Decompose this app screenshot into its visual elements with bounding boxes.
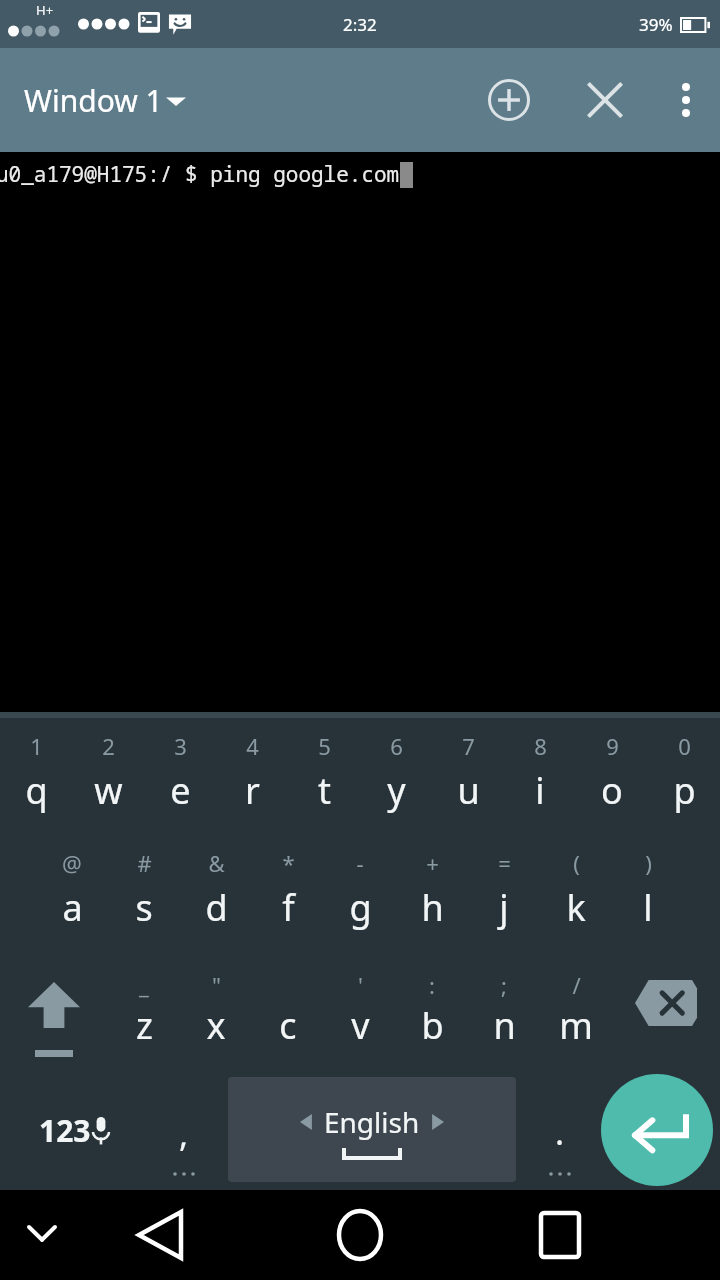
button[interactable]: Close session — [576, 71, 634, 129]
staticText: = — [498, 848, 511, 878]
button[interactable]: 9 — [576, 718, 648, 834]
staticText: d — [205, 883, 228, 932]
staticText: 2 — [102, 731, 115, 761]
button[interactable]: Backspace — [612, 952, 720, 1070]
button[interactable]: ; — [468, 952, 540, 1070]
staticText: 7 — [462, 731, 475, 761]
staticText: 8 — [534, 731, 547, 761]
staticText: o — [601, 766, 623, 815]
button[interactable]: 6 — [360, 718, 432, 834]
staticText: / — [572, 970, 581, 1000]
button[interactable]: Enter — [601, 1074, 713, 1186]
staticText: : — [429, 970, 435, 1000]
staticText: 5 — [318, 731, 331, 761]
staticText: @ — [62, 848, 82, 878]
button[interactable]: More options — [660, 74, 712, 126]
button[interactable]: 5 — [288, 718, 360, 834]
button[interactable]: + — [396, 834, 468, 952]
staticText: p — [673, 766, 696, 815]
button[interactable]: 123 — [0, 1070, 150, 1190]
staticText: Window 1 — [24, 80, 163, 121]
staticText: 6 — [390, 731, 403, 761]
staticText: 4 — [246, 731, 259, 761]
staticText: t — [318, 766, 331, 815]
staticText: x — [206, 1001, 226, 1050]
staticText: * — [282, 848, 295, 878]
button[interactable]: English — [228, 1077, 516, 1182]
staticText: 9 — [606, 731, 619, 761]
button[interactable]: _ — [108, 952, 180, 1070]
button[interactable]: # — [108, 834, 180, 952]
staticText: h — [421, 883, 444, 932]
button[interactable]: 1 — [0, 718, 72, 834]
staticText: e — [170, 766, 191, 815]
staticText: H+ — [36, 1, 54, 19]
button[interactable]: ( — [540, 834, 612, 952]
button[interactable]: ) — [612, 834, 684, 952]
button[interactable]: 0 — [648, 718, 720, 834]
staticText: _ — [139, 970, 149, 1000]
button[interactable]: c — [252, 952, 324, 1070]
staticText: 39% — [639, 13, 673, 36]
staticText: r — [245, 766, 260, 815]
button[interactable]: 2 — [72, 718, 144, 834]
button[interactable]: Hide keyboard — [10, 1203, 74, 1267]
staticText: y — [387, 766, 406, 815]
staticText: 1 — [30, 731, 43, 761]
staticText: # — [137, 848, 152, 878]
button[interactable]: " — [180, 952, 252, 1070]
button[interactable]: u0_a179@H175:/ $ ping google.com — [0, 152, 720, 712]
staticText: u — [457, 766, 480, 815]
staticText: l — [643, 883, 653, 932]
button[interactable]: & — [180, 834, 252, 952]
staticText: v — [351, 1001, 370, 1050]
staticText: a — [62, 883, 83, 932]
button[interactable]: 4 — [216, 718, 288, 834]
staticText: ) — [645, 848, 652, 878]
button[interactable]: 3 — [144, 718, 216, 834]
button[interactable]: 7 — [432, 718, 504, 834]
staticText: " — [212, 970, 221, 1000]
button[interactable]: . — [526, 1070, 594, 1190]
button[interactable]: , — [150, 1070, 218, 1190]
button[interactable]: @ — [36, 834, 108, 952]
button[interactable]: = — [468, 834, 540, 952]
button[interactable]: Shift — [0, 952, 108, 1070]
staticText: b — [421, 1001, 444, 1050]
staticText: & — [208, 848, 225, 878]
button[interactable]: 8 — [504, 718, 576, 834]
staticText: g — [349, 883, 372, 932]
staticText: 123 — [39, 1110, 91, 1151]
button[interactable]: * — [252, 834, 324, 952]
button[interactable]: - — [324, 834, 396, 952]
button[interactable]: Back — [120, 1195, 200, 1275]
staticText: ' — [358, 970, 363, 1000]
staticText: 2:32 — [343, 13, 377, 36]
staticText: i — [535, 766, 545, 815]
button[interactable]: ' — [324, 952, 396, 1070]
button[interactable]: Home — [320, 1195, 400, 1275]
staticText: m — [559, 1001, 593, 1050]
button[interactable]: / — [540, 952, 612, 1070]
staticText: u0_a179@H175:/ $ ping google.com — [0, 160, 400, 189]
button[interactable]: Window 1 — [24, 80, 186, 121]
staticText: k — [566, 883, 586, 932]
staticText: c — [279, 1001, 297, 1050]
button[interactable]: : — [396, 952, 468, 1070]
staticText: ; — [501, 970, 507, 1000]
staticText: w — [94, 766, 123, 815]
button[interactable]: New session — [480, 71, 538, 129]
staticText: + — [426, 848, 439, 878]
staticText: z — [136, 1001, 153, 1050]
staticText: ( — [573, 848, 580, 878]
staticText: English — [324, 1103, 420, 1141]
button[interactable]: Recent apps — [520, 1195, 600, 1275]
staticText: , — [179, 1111, 189, 1157]
staticText: j — [499, 883, 509, 932]
staticText: f — [282, 883, 295, 932]
staticText: s — [135, 883, 153, 932]
staticText: 0 — [678, 731, 691, 761]
staticText: q — [25, 766, 48, 815]
staticText: - — [356, 848, 364, 878]
staticText: n — [493, 1001, 516, 1050]
